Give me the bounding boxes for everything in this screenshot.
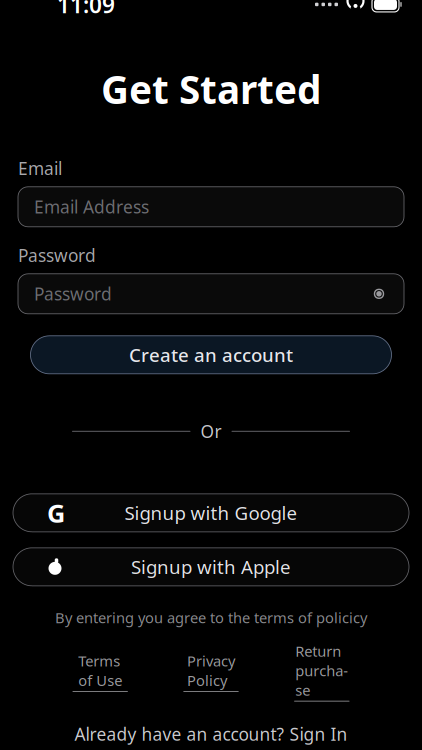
staticText: Terms of Use	[78, 651, 122, 690]
staticText: Email	[18, 157, 62, 180]
button[interactable]: Privacy Policy	[183, 651, 239, 692]
staticText: Privacy Policy	[187, 651, 235, 690]
staticText: Signup with Apple	[131, 554, 291, 579]
staticText: Already have an account? Sign In	[74, 722, 347, 745]
staticText: G	[47, 496, 65, 530]
staticText: Or	[200, 420, 221, 443]
button[interactable]: Create an account	[30, 336, 391, 374]
button[interactable]: Show password	[362, 277, 396, 311]
staticText: By entering you agree to the terms of po…	[55, 608, 367, 627]
staticText: 11:09	[57, 0, 115, 19]
button[interactable]: Already have an account? Sign In	[66, 718, 355, 749]
button[interactable]: Return purchase	[294, 641, 349, 701]
button[interactable]: Terms of Use	[72, 651, 128, 692]
staticText: Password	[34, 282, 112, 305]
button[interactable]: Signup with Google	[13, 494, 409, 532]
staticText: Signup with Google	[124, 500, 297, 525]
staticText: Password	[18, 244, 96, 267]
staticText: Email Address	[34, 195, 149, 218]
staticText: Return purchase	[295, 641, 348, 700]
button[interactable]: Signup with Apple	[13, 548, 409, 586]
staticText: Get Started	[101, 63, 321, 115]
staticText: Create an account	[129, 342, 293, 367]
